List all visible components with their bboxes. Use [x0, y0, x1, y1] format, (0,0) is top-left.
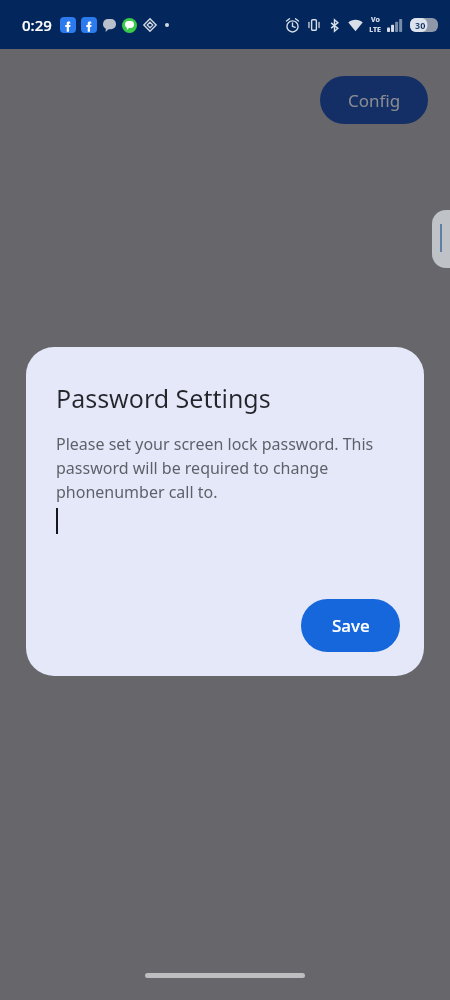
staticText: LTE [369, 25, 381, 35]
staticText: 0:29 [22, 15, 52, 35]
button[interactable]: Panel handle [432, 210, 450, 268]
staticText: Save [332, 614, 370, 637]
staticText: Password Settings [56, 381, 271, 415]
staticText: Config [348, 89, 401, 112]
button[interactable]: Config [320, 76, 428, 124]
staticText: 30 [415, 19, 426, 31]
button[interactable]: Save [301, 599, 400, 652]
staticText: Vo [371, 15, 380, 25]
staticText: Please set your screen lock password. Th… [56, 433, 386, 503]
